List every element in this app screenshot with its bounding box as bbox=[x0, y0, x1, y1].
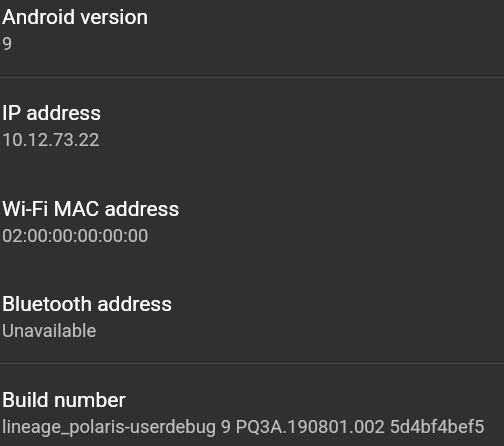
staticText: 02:00:00:00:00:00 bbox=[2, 225, 149, 247]
staticText: lineage_polaris-userdebug 9 PQ3A.190801.… bbox=[2, 416, 485, 438]
staticText: Unavailable bbox=[2, 320, 97, 342]
button[interactable]: Wi-Fi MAC address bbox=[0, 174, 504, 269]
button[interactable]: Build number bbox=[0, 365, 504, 446]
staticText: Wi-Fi MAC address bbox=[2, 197, 180, 222]
button[interactable]: IP address bbox=[0, 78, 504, 173]
staticText: 10.12.73.22 bbox=[2, 129, 100, 151]
staticText: 9 bbox=[2, 33, 13, 55]
button[interactable]: Android version bbox=[0, 0, 504, 77]
staticText: Bluetooth address bbox=[2, 292, 173, 317]
staticText: IP address bbox=[2, 101, 102, 126]
staticText: Android version bbox=[2, 5, 148, 30]
staticText: Build number bbox=[2, 388, 126, 413]
button[interactable]: Bluetooth address bbox=[0, 269, 504, 364]
